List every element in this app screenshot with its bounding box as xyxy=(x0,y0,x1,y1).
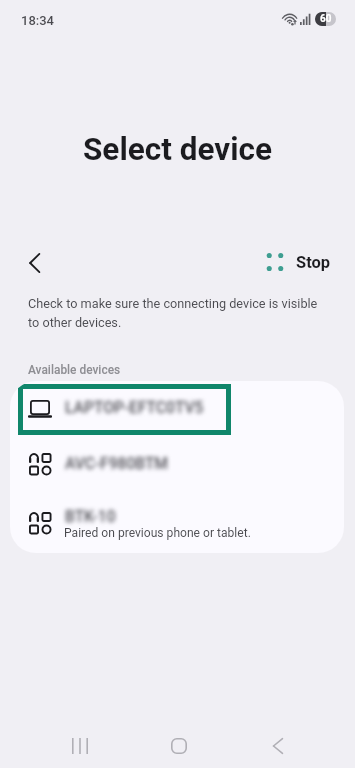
staticText: AVC-F980BTM xyxy=(65,455,169,473)
button[interactable]: LAPTOP-EFTC0TV5 xyxy=(10,381,344,435)
staticText: 18:34 xyxy=(21,13,55,28)
staticText: Paired on previous phone or tablet. xyxy=(64,526,251,540)
staticText: Check to make sure the connecting device… xyxy=(28,296,328,330)
button[interactable]: Home xyxy=(155,722,203,768)
staticText: LAPTOP-EFTC0TV5 xyxy=(65,399,204,417)
staticText: Stop xyxy=(296,253,331,272)
button[interactable]: BTK-10 xyxy=(10,492,344,553)
staticText: BTK-10 xyxy=(65,508,116,526)
button[interactable]: Stop xyxy=(262,244,331,280)
button[interactable]: Recent apps xyxy=(56,722,104,768)
staticText: Available devices xyxy=(28,363,121,377)
button[interactable]: AVC-F980BTM xyxy=(10,435,344,492)
button[interactable]: Navigate up xyxy=(12,240,57,285)
staticText: 60 xyxy=(320,13,332,25)
staticText: Select device xyxy=(83,131,273,168)
button[interactable]: Back xyxy=(254,722,302,768)
